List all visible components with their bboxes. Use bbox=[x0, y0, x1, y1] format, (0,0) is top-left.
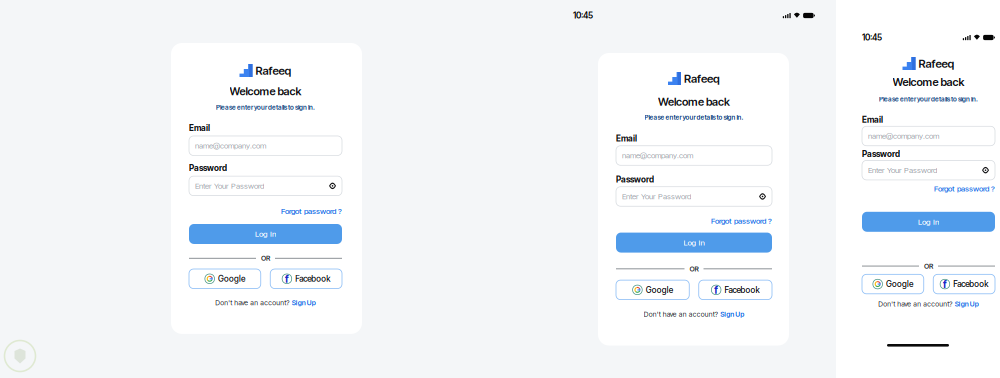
staticText: Sign Up bbox=[292, 298, 316, 307]
button[interactable]: Forgot password ? bbox=[934, 184, 995, 193]
button[interactable]: Forgot password ? bbox=[711, 216, 772, 226]
staticText: Facebook bbox=[724, 285, 759, 295]
button[interactable]: Enter Your Password bbox=[189, 176, 342, 196]
staticText: Log In bbox=[683, 238, 704, 247]
staticText: Don't have an account? bbox=[878, 300, 952, 308]
staticText: Sign Up bbox=[720, 310, 744, 318]
staticText: Please enter your details to sign in. bbox=[644, 113, 743, 121]
button[interactable]: Forgot password ? bbox=[281, 207, 342, 216]
staticText: Forgot password ? bbox=[281, 207, 342, 216]
button[interactable]: f bbox=[270, 269, 342, 288]
staticText: Password bbox=[862, 149, 900, 159]
staticText: Please enter your details to sign in. bbox=[216, 103, 315, 111]
button[interactable]: f bbox=[699, 280, 772, 300]
staticText: Email bbox=[616, 133, 637, 143]
staticText: OR bbox=[261, 254, 270, 262]
staticText: Email bbox=[189, 123, 210, 133]
staticText: Email bbox=[862, 115, 883, 125]
button[interactable]: Enter Your Password bbox=[616, 187, 772, 206]
staticText: Enter Your Password bbox=[195, 181, 264, 191]
button[interactable]: Google bbox=[189, 269, 261, 288]
staticText: Log In bbox=[255, 229, 276, 239]
button[interactable]: Google bbox=[616, 280, 689, 300]
staticText: Don't have an account? bbox=[215, 298, 289, 307]
staticText: name@company.com bbox=[868, 131, 939, 141]
button[interactable]: Don't have an account? bbox=[878, 300, 979, 308]
button[interactable]: Google bbox=[862, 274, 924, 294]
staticText: Welcome back bbox=[229, 84, 301, 98]
staticText: Password bbox=[616, 174, 654, 184]
staticText: Log In bbox=[918, 217, 939, 226]
staticText: Enter Your Password bbox=[868, 165, 937, 175]
staticText: OR bbox=[689, 265, 698, 273]
staticText: Google bbox=[886, 279, 913, 289]
button[interactable]: name@company.com bbox=[189, 136, 342, 155]
button[interactable]: f bbox=[933, 274, 995, 294]
staticText: 10:45 bbox=[862, 32, 882, 43]
staticText: f bbox=[285, 273, 289, 285]
staticText: Welcome back bbox=[892, 75, 964, 89]
staticText: 10:45 bbox=[573, 10, 593, 21]
staticText: Sign Up bbox=[955, 300, 979, 308]
button[interactable]: Log In bbox=[189, 224, 342, 244]
staticText: Facebook bbox=[953, 279, 988, 289]
staticText: name@company.com bbox=[195, 141, 266, 150]
staticText: name@company.com bbox=[622, 151, 693, 160]
button[interactable]: name@company.com bbox=[616, 146, 772, 165]
staticText: Forgot password ? bbox=[711, 216, 772, 226]
staticText: Please enter your details to sign in. bbox=[879, 95, 978, 103]
staticText: f bbox=[714, 284, 718, 296]
button[interactable]: Don't have an account? bbox=[215, 298, 316, 307]
staticText: Facebook bbox=[295, 274, 330, 284]
staticText: OR bbox=[924, 262, 933, 270]
button[interactable]: Don't have an account? bbox=[644, 310, 744, 318]
staticText: Rafeeq bbox=[918, 57, 954, 70]
staticText: Google bbox=[646, 285, 673, 295]
button[interactable]: Log In bbox=[862, 212, 995, 232]
button[interactable]: Log In bbox=[616, 233, 772, 253]
staticText: Rafeeq bbox=[684, 72, 720, 85]
staticText: Don't have an account? bbox=[644, 310, 718, 318]
staticText: Welcome back bbox=[658, 95, 730, 108]
staticText: Google bbox=[218, 274, 245, 284]
staticText: Forgot password ? bbox=[934, 184, 995, 193]
staticText: f bbox=[943, 278, 947, 290]
staticText: Rafeeq bbox=[255, 64, 291, 77]
button[interactable]: name@company.com bbox=[862, 126, 995, 146]
staticText: Password bbox=[189, 163, 227, 173]
staticText: Enter Your Password bbox=[622, 192, 691, 201]
button[interactable]: Enter Your Password bbox=[862, 160, 995, 180]
